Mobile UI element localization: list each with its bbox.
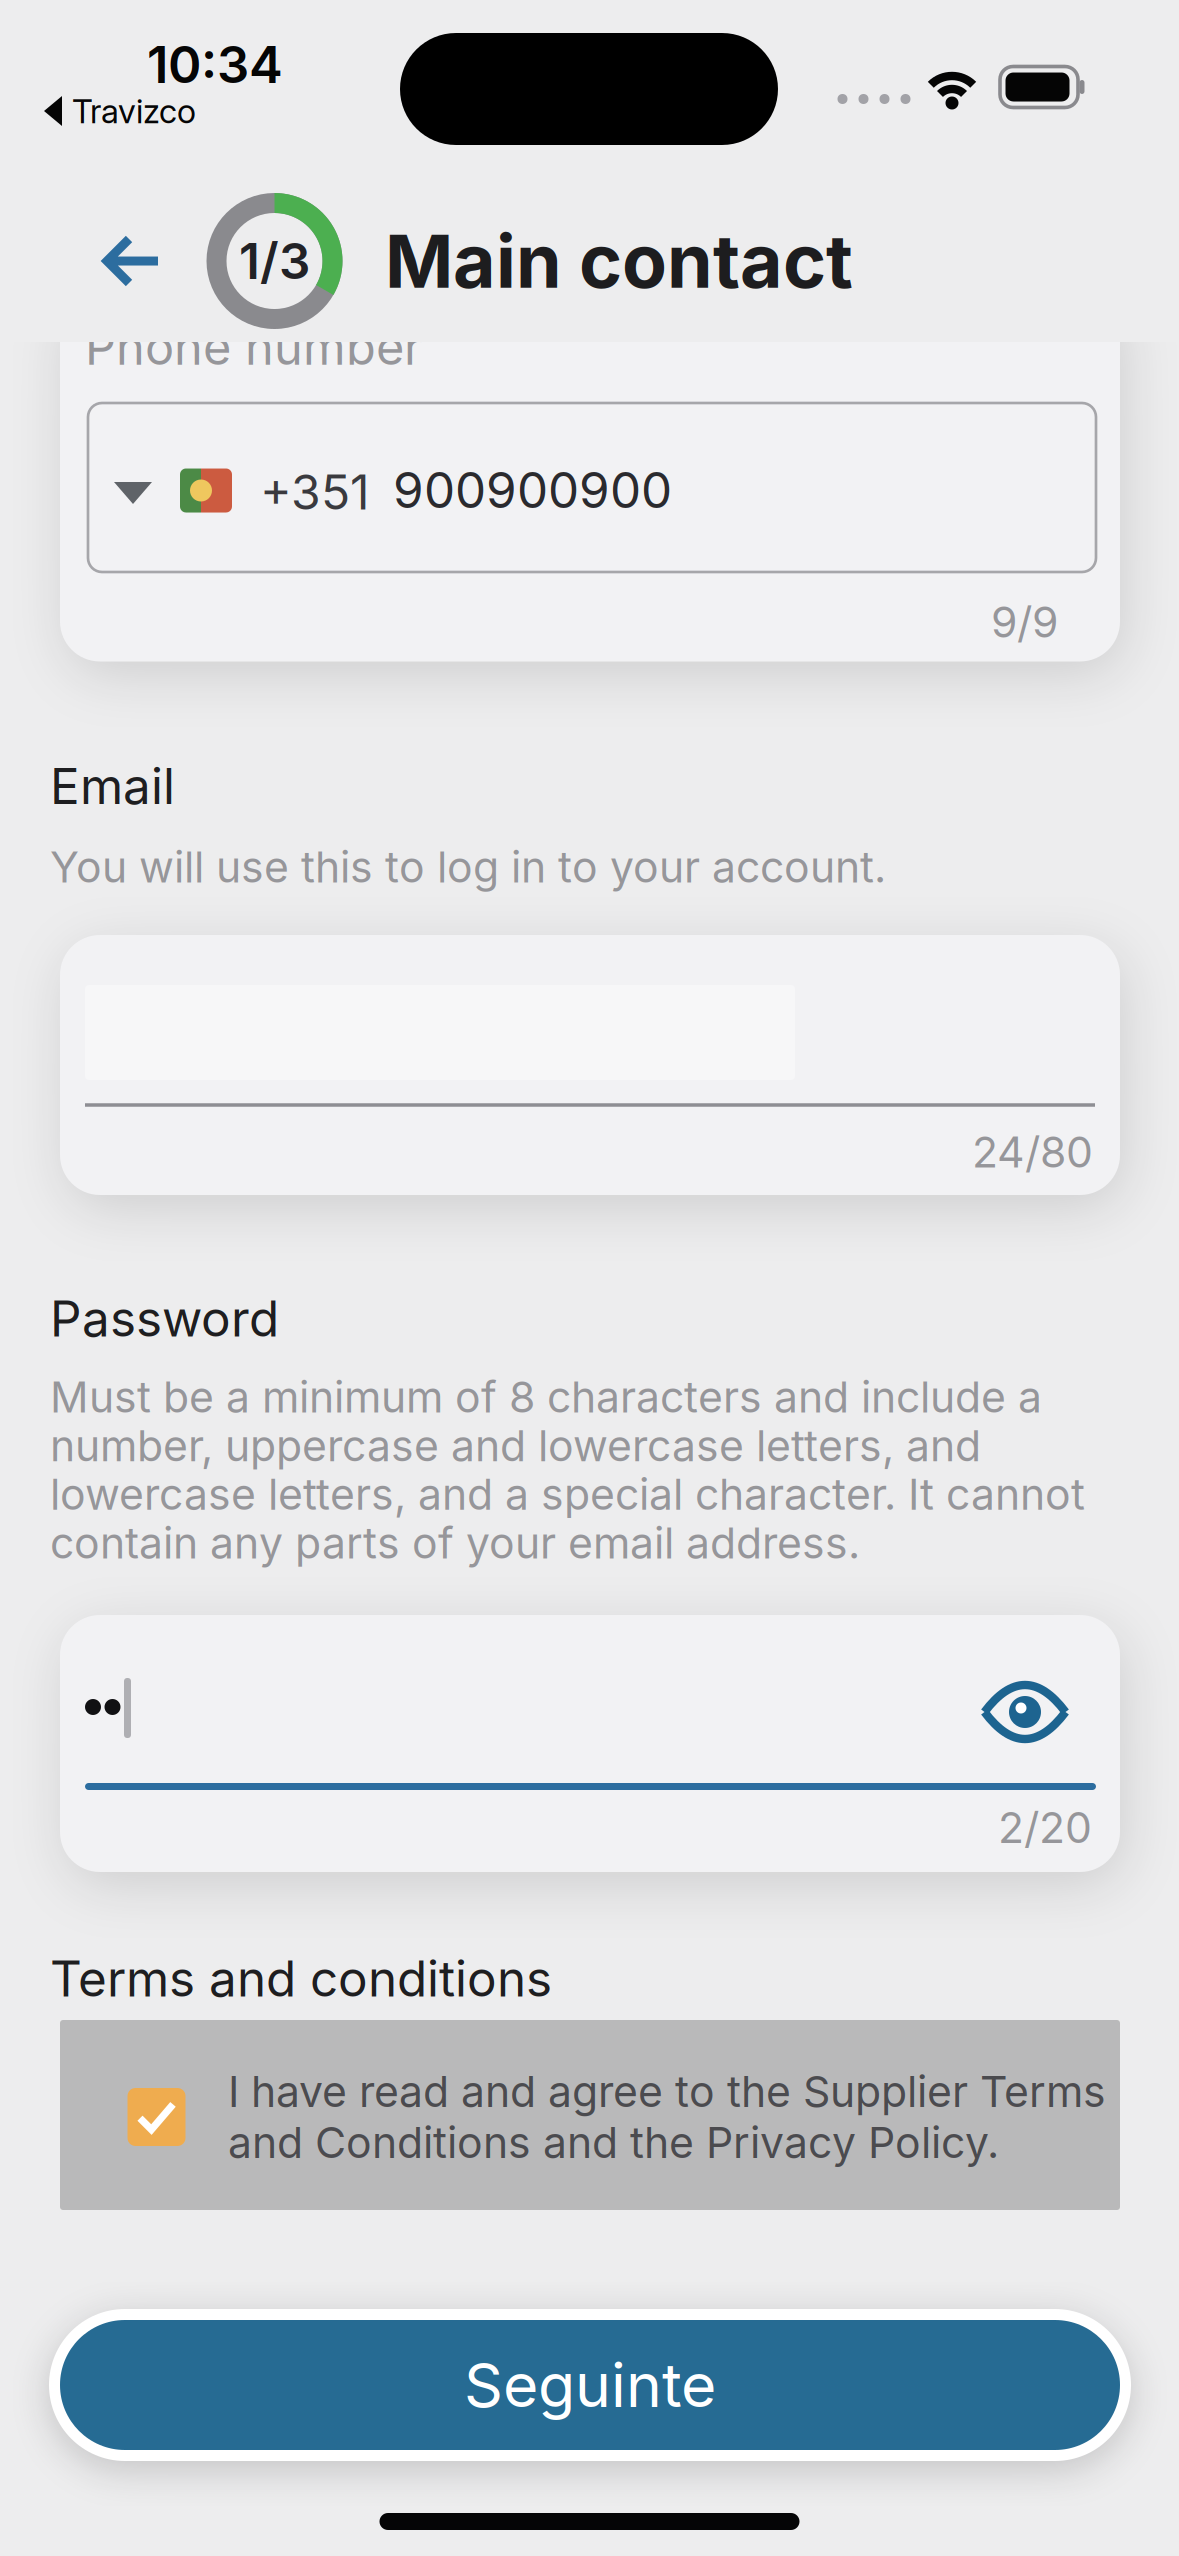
staticText: Email (50, 757, 175, 815)
staticText: 24/80 (972, 1126, 1093, 1178)
staticText: Seguinte (464, 2348, 716, 2422)
staticText: +351 (260, 464, 370, 520)
button[interactable]: Back (105, 237, 159, 285)
staticText: number, uppercase and lowercase letters,… (50, 1420, 981, 1471)
staticText: and Conditions and the Privacy Policy. (228, 2117, 999, 2168)
staticText: 9/9 (991, 596, 1058, 648)
staticText: Must be a minimum of 8 characters and in… (50, 1371, 1042, 1423)
staticText: 1/3 (239, 232, 310, 290)
button[interactable]: Show password (980, 1673, 1070, 1751)
staticText: Main contact (385, 218, 853, 304)
staticText: 2/20 (998, 1802, 1092, 1853)
staticText: contain any parts of your email address. (50, 1517, 860, 1569)
button[interactable]: I agree to the terms, checked (127, 2088, 185, 2146)
staticText: Travizco (72, 91, 196, 131)
staticText: You will use this to log in to your acco… (50, 841, 886, 893)
button[interactable]: Back to Travizco (44, 91, 196, 131)
staticText: I have read and agree to the Supplier Te… (228, 2066, 1106, 2117)
button[interactable]: Seguinte (49, 2309, 1131, 2461)
staticText: Password (50, 1289, 279, 1348)
staticText: Phone number (85, 318, 422, 376)
staticText: Terms and conditions (50, 1949, 552, 2008)
staticText: 10:34 (147, 35, 283, 94)
button[interactable]: Phone number, +351 900900900 (88, 403, 1096, 572)
staticText: lowercase letters, and a special charact… (50, 1468, 1085, 1520)
staticText: 900900900 (393, 461, 672, 519)
